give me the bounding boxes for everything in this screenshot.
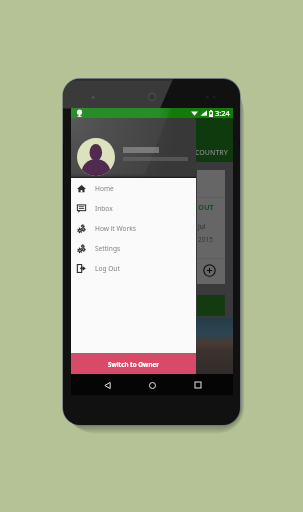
button[interactable]: Back xyxy=(97,375,117,395)
button[interactable]: Log Out xyxy=(71,258,196,278)
staticText: Settings xyxy=(95,244,121,253)
staticText: 2015 xyxy=(198,235,213,244)
button[interactable]: OUT xyxy=(197,170,225,284)
button[interactable]: Home xyxy=(71,178,196,198)
staticText: Home xyxy=(95,184,114,193)
button[interactable]: Switch to Owner xyxy=(71,353,196,374)
button[interactable]: How it Works xyxy=(71,218,196,238)
staticText: Switch to Owner xyxy=(108,360,159,368)
button[interactable]: Home xyxy=(142,375,162,395)
button[interactable]: Recents xyxy=(188,375,208,395)
staticText: How it Works xyxy=(95,224,136,233)
staticText: COUNTRY xyxy=(195,148,228,158)
button[interactable]: Add xyxy=(203,264,216,277)
button[interactable]: Settings xyxy=(71,238,196,258)
staticText: Inbox xyxy=(95,204,113,213)
staticText: OUT xyxy=(198,202,214,212)
staticText: Log Out xyxy=(95,264,120,273)
staticText: Jul xyxy=(198,222,206,231)
staticText: 3:24 xyxy=(215,108,230,118)
button[interactable]: Inbox xyxy=(71,198,196,218)
